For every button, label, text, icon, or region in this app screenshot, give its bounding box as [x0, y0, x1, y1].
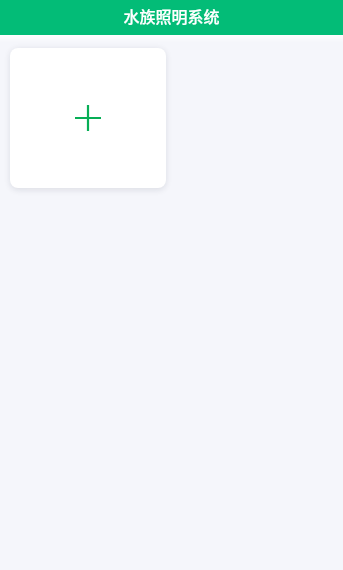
button[interactable]: 添加设备: [10, 48, 166, 188]
staticText: 水族照明系统: [123, 4, 220, 27]
